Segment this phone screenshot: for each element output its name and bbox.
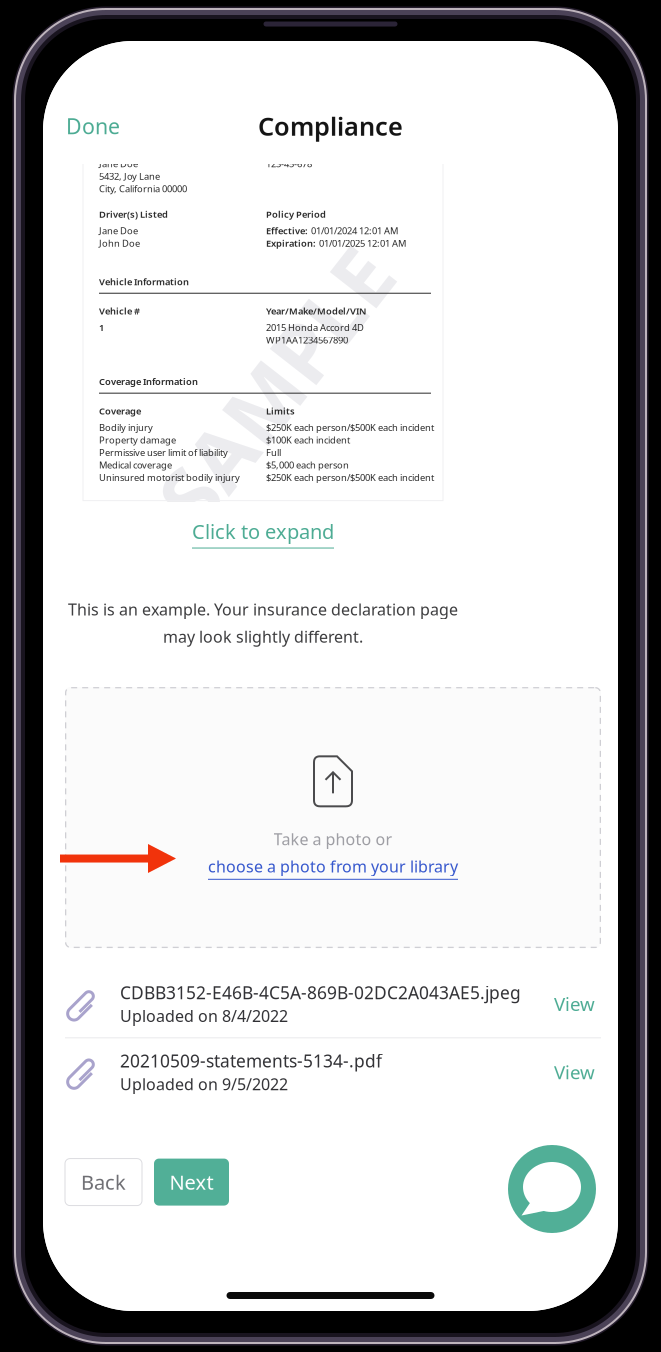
staticText: Compliance [258,109,403,143]
staticText: 01/01/2025 12:01 AM [319,237,406,249]
staticText: $250K each person/$500K each incident [266,421,434,434]
staticText: Jane Doe [99,157,138,170]
staticText: Click to expand [192,518,334,545]
staticText: $5,000 each person [266,459,349,471]
staticText: Uninsured motorist bodily injury [99,471,240,484]
staticText: 123-45-678 [266,157,312,170]
staticText: $250K each person/$500K each incident [266,471,434,484]
staticText: Uploaded on 9/5/2022 [120,1073,288,1094]
staticText: Take a photo or [273,828,392,849]
staticText: View [554,1060,595,1084]
staticText: choose a photo from your library [208,856,458,877]
staticText: WP1AA1234567890 [266,334,348,346]
button[interactable]: Next [154,1159,229,1206]
staticText: may look slightly different. [163,626,363,647]
button[interactable]: View [548,986,601,1021]
staticText: 5432, Joy Lane [99,170,160,182]
staticText: 2015 Honda Accord 4D [266,321,364,334]
staticText: Next [169,1169,213,1195]
staticText: Done [66,112,120,140]
staticText: Permissive user limit of liability [99,446,228,459]
staticText: John Doe [99,237,140,249]
staticText: Coverage [99,405,141,417]
staticText: Policy Period [266,208,326,220]
staticText: Effective: [266,224,308,237]
button[interactable]: Click to expand [65,502,461,571]
staticText: Bodily injury [99,421,153,434]
staticText: Coverage Information [99,375,198,388]
staticText: SAMPLE [113,331,437,441]
staticText: 01/01/2024 12:01 AM [311,224,398,237]
button[interactable]: Chat support [508,1145,596,1233]
button[interactable]: choose a photo from your library [208,856,458,880]
button[interactable]: View [548,1055,601,1089]
staticText: 20210509-statements-5134-.pdf [120,1049,382,1072]
staticText: Driver(s) Listed [99,208,168,220]
button[interactable]: Done [43,100,134,152]
staticText: Back [81,1169,126,1195]
staticText: 1 [99,321,104,334]
staticText: $100K each incident [266,434,350,446]
staticText: Year/Make/Model/VIN [266,305,366,317]
staticText: Uploaded on 8/4/2022 [120,1005,288,1026]
staticText: Medical coverage [99,459,172,471]
staticText: City, California 00000 [99,182,187,195]
staticText: View [554,991,595,1016]
staticText: Property damage [99,434,176,446]
staticText: CDBB3152-E46B-4C5A-869B-02DC2A043AE5.jpe… [120,981,521,1004]
button[interactable]: Back [65,1159,142,1206]
staticText: Vehicle # [99,305,140,317]
staticText: This is an example. Your insurance decla… [68,599,458,620]
staticText: Limits [266,405,295,417]
staticText: Jane Doe [99,224,138,237]
staticText: Vehicle Information [99,275,189,288]
staticText: Expiration: [266,237,316,249]
staticText: Full [266,446,281,459]
